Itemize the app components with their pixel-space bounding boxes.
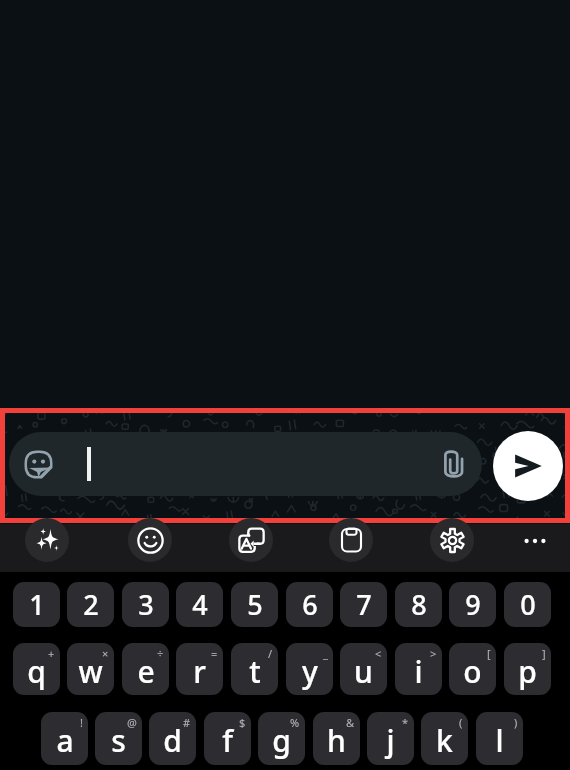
button[interactable]: 7 — [340, 582, 387, 627]
button[interactable]: i — [395, 643, 442, 695]
button[interactable]: 9 — [449, 582, 496, 627]
button[interactable]: Emoji — [128, 518, 172, 562]
staticText: & — [346, 715, 355, 730]
button[interactable]: r — [176, 643, 223, 695]
button[interactable]: 0 — [504, 582, 551, 627]
staticText: 8 — [411, 586, 427, 623]
button[interactable]: 3 — [122, 582, 169, 627]
staticText: u — [354, 651, 373, 692]
staticText: × — [102, 646, 109, 661]
button[interactable]: a — [41, 712, 88, 765]
staticText: * — [402, 715, 409, 730]
button[interactable]: 6 — [286, 582, 333, 627]
staticText: h — [327, 720, 346, 761]
staticText: 0 — [520, 586, 536, 623]
button[interactable]: 2 — [67, 582, 114, 627]
button[interactable]: Stickers — [9, 432, 482, 496]
staticText: r — [193, 651, 206, 692]
button[interactable]: 1 — [13, 582, 60, 627]
button[interactable]: h — [313, 712, 360, 765]
button[interactable]: k — [421, 712, 468, 765]
button[interactable]: w — [67, 643, 114, 695]
staticText: 5 — [247, 586, 263, 623]
staticText: @ — [127, 715, 137, 730]
button[interactable]: d — [149, 712, 196, 765]
button[interactable]: f — [204, 712, 251, 765]
staticText: a — [56, 720, 74, 761]
staticText: / — [268, 646, 273, 661]
staticText: ) — [514, 715, 518, 730]
staticText: ( — [459, 715, 463, 730]
staticText: k — [436, 720, 453, 761]
staticText: $ — [239, 715, 246, 730]
staticText: 7 — [356, 586, 372, 623]
staticText: 4 — [192, 586, 208, 623]
staticText: + — [48, 646, 55, 661]
staticText: 2 — [83, 586, 99, 623]
staticText: l — [495, 720, 504, 761]
button[interactable]: More options — [514, 520, 556, 562]
button[interactable]: Settings — [430, 518, 474, 562]
staticText: 1 — [29, 586, 45, 623]
staticText: > — [430, 646, 437, 661]
button[interactable]: q — [13, 643, 60, 695]
staticText: g — [272, 720, 291, 761]
button[interactable]: o — [449, 643, 496, 695]
button[interactable]: s — [95, 712, 142, 765]
staticText: q — [27, 651, 46, 692]
button[interactable]: Stickers — [24, 450, 53, 479]
button[interactable]: Clipboard — [329, 518, 373, 562]
staticText: # — [183, 715, 191, 730]
staticText: s — [111, 720, 126, 761]
staticText: ! — [80, 715, 83, 730]
staticText: f — [222, 720, 233, 761]
staticText: p — [518, 651, 537, 692]
staticText: < — [375, 646, 382, 661]
staticText: ] — [542, 646, 546, 661]
staticText: e — [137, 651, 155, 692]
staticText: 9 — [465, 586, 481, 623]
button[interactable]: 5 — [231, 582, 278, 627]
staticText: d — [163, 720, 182, 761]
button[interactable]: l — [476, 712, 523, 765]
staticText: w — [78, 651, 103, 692]
button[interactable]: AI assistant — [25, 518, 69, 562]
button[interactable]: 4 — [176, 582, 223, 627]
button[interactable]: Attach — [439, 448, 471, 480]
staticText: ÷ — [157, 646, 164, 661]
staticText: % — [290, 715, 300, 730]
button[interactable]: e — [122, 643, 169, 695]
staticText: 6 — [302, 586, 318, 623]
staticText: y — [302, 651, 318, 692]
button[interactable]: Translate — [229, 518, 273, 562]
staticText: 3 — [138, 586, 154, 623]
button[interactable]: t — [231, 643, 278, 695]
button[interactable]: g — [258, 712, 305, 765]
button[interactable]: y — [286, 643, 333, 695]
staticText: j — [386, 720, 395, 761]
staticText: o — [463, 651, 482, 692]
button[interactable]: Send — [493, 431, 563, 501]
staticText: i — [414, 651, 423, 692]
button[interactable]: u — [340, 643, 387, 695]
staticText: _ — [323, 646, 328, 661]
staticText: = — [211, 646, 218, 661]
staticText: t — [249, 651, 261, 692]
button[interactable]: j — [367, 712, 414, 765]
button[interactable]: p — [504, 643, 551, 695]
staticText: [ — [487, 646, 491, 661]
button[interactable]: 8 — [395, 582, 442, 627]
